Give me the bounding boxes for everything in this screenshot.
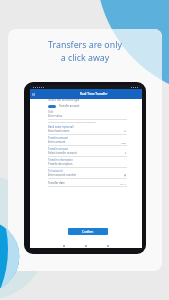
staticText: Title — [48, 110, 54, 113]
button[interactable] — [48, 105, 56, 108]
staticText: Enter account number — [48, 173, 77, 177]
staticText: Enter value — [48, 114, 63, 118]
button[interactable]: Recent apps — [105, 243, 110, 248]
staticText: ▾ — [125, 152, 127, 155]
staticText: Transfer information — [48, 158, 73, 161]
staticText: Confirm — [82, 230, 94, 234]
button[interactable]: Back — [61, 243, 66, 248]
staticText: Enter bank name — [48, 129, 70, 133]
staticText: USD — [121, 141, 127, 144]
staticText: Bank name (optional) — [48, 125, 74, 128]
staticText: 12 / 1 — [120, 182, 127, 185]
staticText: Lorem ipsum dolor sit amet consectetur a… — [48, 121, 96, 124]
staticText: Transfers are only a click away — [48, 39, 122, 64]
button[interactable]: Home — [83, 243, 88, 248]
button[interactable]: Transfer account — [59, 104, 80, 108]
staticText: ⊙ — [124, 130, 127, 133]
staticText: Select the account type — [48, 98, 80, 102]
staticText: To (account) — [48, 169, 63, 172]
button[interactable]: Confirm — [68, 228, 108, 235]
staticText: Transfer date — [48, 181, 65, 185]
staticText: Enter amount — [48, 140, 66, 144]
staticText: Provide description — [48, 162, 73, 166]
staticText: Real Time Transfer — [80, 92, 108, 96]
staticText: Transfer amount — [48, 136, 68, 139]
staticText: Transfer account — [59, 104, 80, 108]
staticText: Transfer account — [48, 147, 69, 150]
staticText: Select transfer account — [48, 151, 77, 155]
staticText: ◉ — [124, 174, 127, 177]
